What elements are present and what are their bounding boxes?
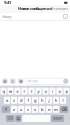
staticText: x — [20, 107, 22, 112]
staticText: ⌫ — [61, 107, 67, 112]
staticText: A — [11, 78, 14, 84]
staticText: d — [20, 98, 22, 103]
button[interactable]: j — [46, 97, 52, 104]
staticText: l — [62, 98, 63, 103]
staticText: h — [41, 98, 43, 103]
staticText: ● — [19, 79, 22, 83]
button[interactable]: q — [0, 88, 7, 95]
staticText: q — [2, 88, 4, 94]
button[interactable]: Apps — [10, 78, 16, 84]
button[interactable]: d — [18, 97, 24, 104]
staticText: r — [23, 88, 25, 94]
button[interactable]: n — [46, 106, 52, 113]
button[interactable]: i — [49, 88, 56, 95]
staticText: g — [34, 98, 36, 103]
button[interactable]: z — [11, 106, 17, 113]
staticText: p — [65, 88, 67, 94]
button[interactable]: c — [25, 106, 31, 113]
staticText: ▣ — [3, 79, 7, 83]
button[interactable]: Camera — [2, 78, 8, 84]
staticText: e — [16, 88, 18, 94]
staticText: z — [13, 107, 15, 112]
staticText: v — [34, 107, 36, 112]
staticText: Отменить — [50, 6, 68, 11]
button[interactable]: v — [32, 106, 38, 113]
staticText: k — [55, 98, 57, 103]
button[interactable]: w — [7, 88, 14, 95]
button[interactable]: l — [60, 97, 66, 104]
staticText: Новое сообщение — [18, 6, 52, 11]
button[interactable]: p — [63, 88, 70, 95]
button[interactable]: ⌫ — [60, 106, 68, 113]
staticText: 123 — [7, 117, 13, 120]
button[interactable]: Add contact — [63, 14, 70, 19]
button[interactable]: t — [28, 88, 35, 95]
staticText: ⇧ — [4, 107, 7, 112]
staticText: t — [31, 88, 32, 94]
button[interactable]: u — [42, 88, 49, 95]
button[interactable]: return — [51, 115, 64, 122]
button[interactable]: y — [35, 88, 42, 95]
button[interactable]: k — [53, 97, 59, 104]
button[interactable]: x — [18, 106, 24, 113]
staticText: ↑ — [65, 80, 67, 83]
button[interactable]: ☺ — [15, 115, 21, 122]
staticText: b — [41, 107, 43, 112]
button[interactable]: m — [53, 106, 59, 113]
staticText: ☺ — [16, 116, 20, 121]
staticText: 9:41 — [4, 0, 11, 5]
staticText: c — [27, 107, 29, 112]
staticText: a — [6, 98, 8, 103]
button[interactable]: Send — [63, 79, 68, 84]
staticText: n — [48, 107, 50, 112]
staticText: i — [52, 88, 53, 94]
staticText: iMessage — [27, 79, 39, 83]
staticText: ▮▮▮ — [64, 1, 67, 4]
button[interactable]: a — [4, 97, 10, 104]
staticText: j — [48, 98, 49, 103]
staticText: s — [13, 98, 15, 103]
button[interactable]: e — [14, 88, 21, 95]
button[interactable]: More — [18, 78, 24, 84]
button[interactable]: o — [56, 88, 63, 95]
staticText: + — [64, 15, 66, 18]
staticText: Кому: — [2, 14, 12, 19]
button[interactable]: g — [32, 97, 38, 104]
button[interactable]: b — [39, 106, 45, 113]
button[interactable]: h — [39, 97, 45, 104]
button[interactable]: ⇧ — [2, 106, 10, 113]
staticText: m — [54, 107, 58, 112]
staticText: y — [37, 88, 39, 94]
button[interactable]: Отменить — [50, 6, 70, 11]
staticText: o — [58, 88, 60, 94]
staticText: u — [44, 88, 46, 94]
button[interactable]: s — [11, 97, 17, 104]
button[interactable]: f — [25, 97, 31, 104]
button[interactable]: 123 — [6, 115, 14, 122]
button[interactable]: r — [21, 88, 28, 95]
staticText: return — [53, 117, 62, 120]
staticText: w — [9, 88, 12, 94]
